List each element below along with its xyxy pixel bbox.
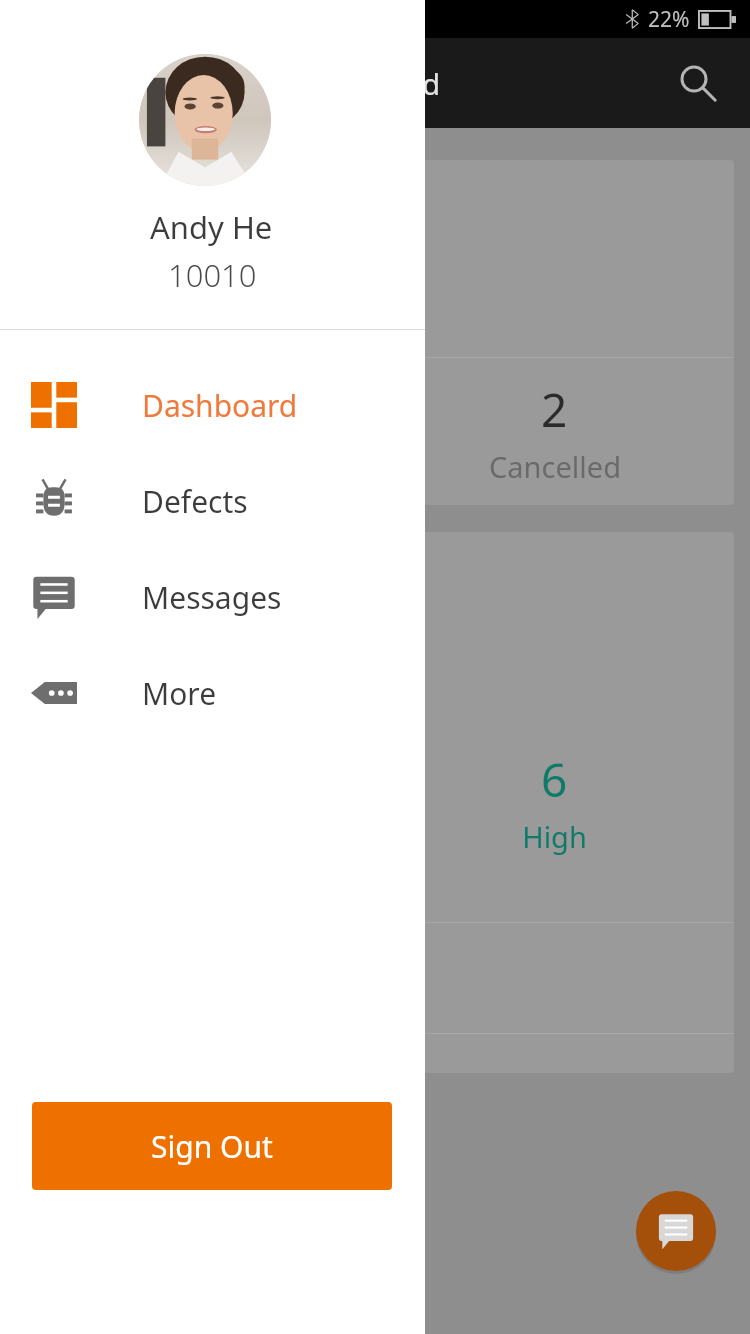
staticText: Defects: [142, 481, 248, 522]
button[interactable]: Sign Out: [32, 1102, 392, 1190]
button[interactable]: Messages: [0, 549, 425, 645]
button[interactable]: Defects: [0, 453, 425, 549]
button[interactable]: More: [0, 645, 425, 741]
button[interactable]: Search: [670, 55, 726, 111]
staticText: Dashboard: [142, 385, 298, 426]
button[interactable]: [139, 54, 271, 186]
staticText: 6: [541, 748, 568, 811]
staticText: 5: [182, 378, 209, 441]
staticText: Cancelled: [489, 447, 621, 486]
staticText: Dashboard: [290, 64, 441, 103]
button[interactable]: Dashboard: [0, 357, 425, 453]
staticText: More: [142, 673, 217, 714]
staticText: 2: [541, 378, 568, 441]
staticText: Sign Out: [151, 1126, 273, 1167]
staticText: 22%: [648, 5, 690, 34]
staticText: High: [522, 817, 587, 856]
staticText: Andy He: [150, 206, 273, 248]
button[interactable]: New message: [636, 1191, 716, 1271]
button[interactable]: Target: [16, 160, 734, 505]
button[interactable]: 4: [16, 532, 734, 1073]
staticText: Messages: [142, 577, 282, 618]
staticText: 10010: [168, 254, 257, 296]
